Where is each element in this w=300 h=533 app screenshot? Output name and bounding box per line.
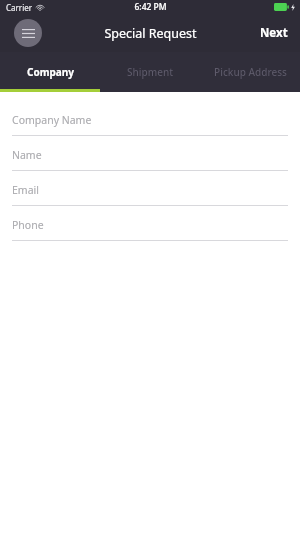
staticText: Next	[260, 25, 288, 41]
button[interactable]: Shipment	[100, 52, 200, 92]
staticText: Pickup Address	[214, 65, 287, 79]
staticText: 6:42 PM	[134, 1, 167, 13]
button[interactable]: Company Name	[0, 104, 300, 139]
button[interactable]: Email	[0, 174, 300, 209]
button[interactable]: Menu	[14, 19, 42, 47]
button[interactable]: Name	[0, 139, 300, 174]
staticText: Special Request	[104, 25, 197, 42]
staticText: Shipment	[127, 65, 173, 79]
button[interactable]: Next	[248, 17, 300, 49]
staticText: Phone	[12, 218, 44, 232]
staticText: Carrier	[6, 2, 33, 13]
staticText: Name	[12, 148, 42, 162]
staticText: Email	[12, 183, 39, 197]
staticText: Company	[27, 65, 74, 79]
staticText: Company Name	[12, 113, 92, 127]
button[interactable]: Pickup Address	[200, 52, 300, 92]
button[interactable]: Company	[0, 52, 100, 92]
button[interactable]: Phone	[0, 209, 300, 244]
